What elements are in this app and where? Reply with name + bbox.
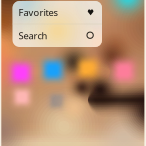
button[interactable]: Search (12, 24, 102, 47)
button[interactable]: Favorites (12, 1, 102, 24)
staticText: Search (18, 29, 47, 42)
staticText: Favorites (18, 6, 57, 19)
